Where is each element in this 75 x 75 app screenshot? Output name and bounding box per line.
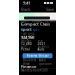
staticText: Fuel <box>21 45 27 48</box>
staticText: Petrol <box>21 48 30 51</box>
staticText: $24,950 <box>21 34 34 40</box>
staticText: 12,480 <box>21 42 32 46</box>
staticText: Book test drive <box>23 58 36 66</box>
button[interactable]: Back <box>21 6 30 12</box>
button[interactable]: See full spec <box>21 28 39 31</box>
staticText: Reserve this car <box>26 54 48 57</box>
staticText: Gearbox <box>37 45 48 48</box>
staticText: Save <box>46 7 54 12</box>
staticText: Cash price <box>21 32 35 35</box>
button[interactable]: Reserve this car <box>22 53 52 58</box>
button[interactable]: Save <box>46 6 54 12</box>
staticText: Monthly from $349 <box>21 69 48 72</box>
button[interactable]: Book test drive <box>22 60 37 64</box>
staticText: Compact Class sport <box>21 21 50 32</box>
staticText: Ask a question <box>39 58 52 66</box>
button[interactable]: Ask a question <box>38 60 53 64</box>
staticText: Back <box>21 7 30 12</box>
staticText: Year <box>37 39 42 43</box>
staticText: See full spec <box>21 28 39 32</box>
staticText: Finance <box>21 64 36 69</box>
staticText: 2021 · Coupe · 12,480 mi <box>21 19 56 27</box>
staticText: Mileage <box>21 39 32 43</box>
staticText: Auto <box>37 48 44 51</box>
staticText: 9:41 <box>23 0 30 6</box>
staticText: 2021 <box>37 42 45 46</box>
